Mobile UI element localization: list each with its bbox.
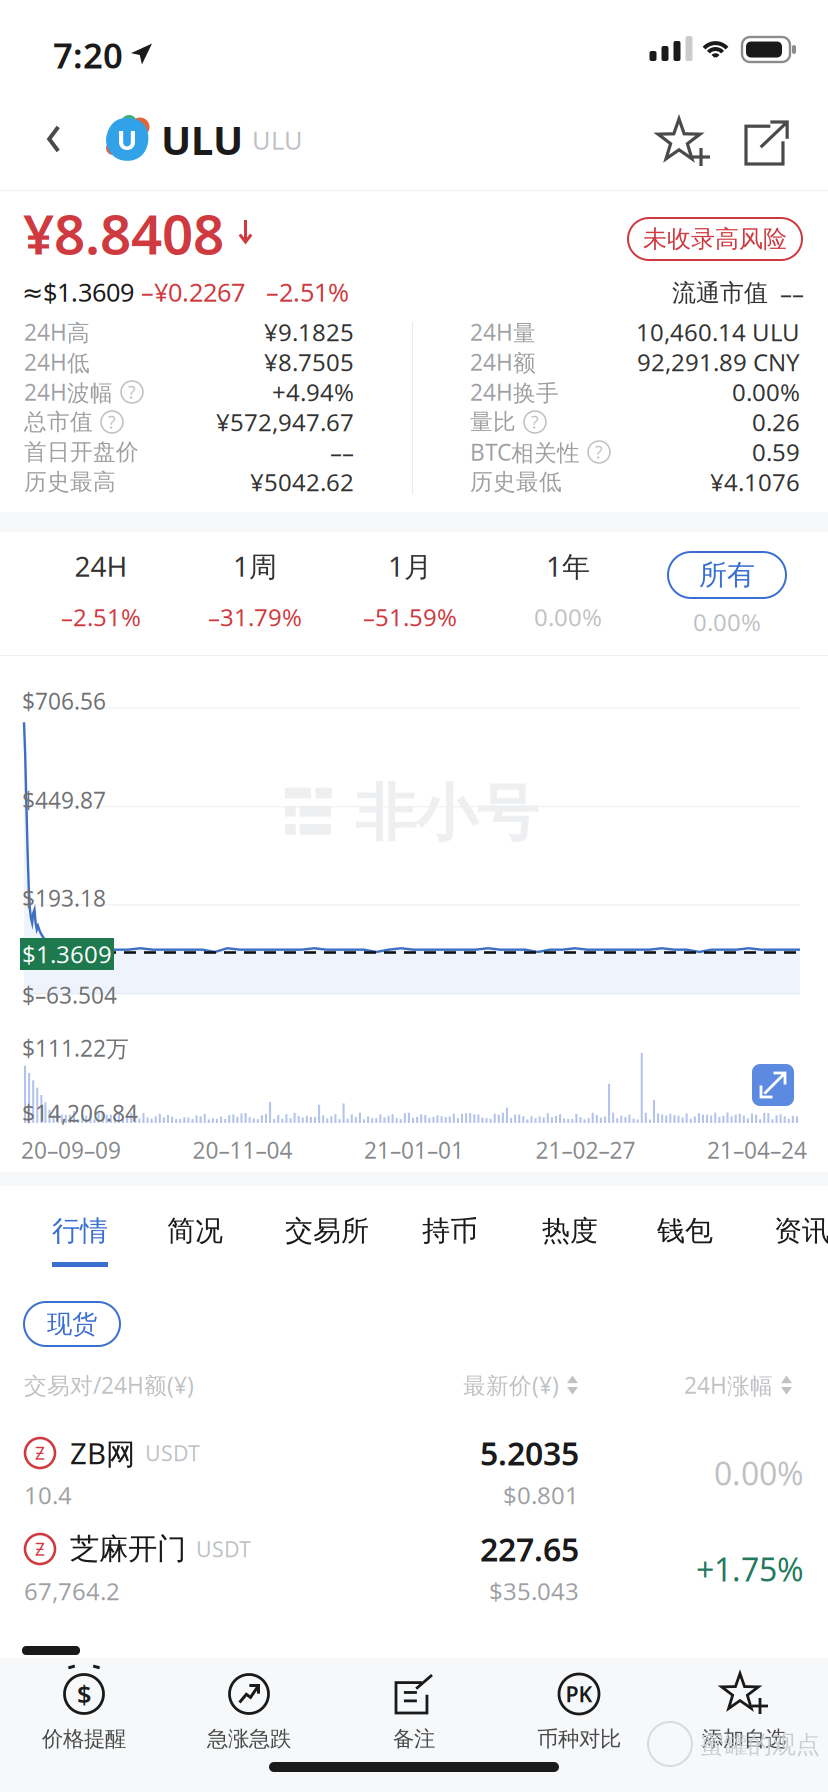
staticText: 交易所 — [285, 1214, 369, 1248]
button[interactable]: 钱包 — [635, 1200, 735, 1294]
staticText: 24H高 — [24, 317, 90, 347]
staticText: ? — [531, 410, 539, 433]
button[interactable]: 交易所 — [265, 1200, 389, 1294]
staticText: Ƶ — [35, 1441, 45, 1464]
staticText: +1.75% — [696, 1548, 804, 1590]
staticText: Ƶ — [35, 1537, 45, 1560]
staticText: 1月 — [388, 547, 432, 585]
button[interactable]: PK — [496, 1666, 661, 1756]
staticText: 24H波幅 — [24, 377, 113, 407]
staticText: $193.18 — [22, 883, 106, 913]
staticText: $14,206.84 — [22, 1098, 138, 1128]
button[interactable]: 未收录高风险 — [628, 218, 802, 260]
staticText: 历史最高 — [24, 468, 116, 496]
staticText: 24H额 — [470, 347, 536, 377]
button[interactable]: 备注 — [331, 1666, 496, 1756]
staticText: 行情 — [52, 1214, 108, 1248]
button[interactable]: 急涨急跌 — [166, 1666, 331, 1756]
staticText: ULU — [161, 113, 243, 166]
staticText: 历史最低 — [470, 468, 562, 496]
staticText: 0.59 — [752, 436, 800, 468]
staticText: $449.87 — [22, 785, 106, 815]
button[interactable]: 热度 — [520, 1200, 620, 1294]
button[interactable]: 持币 — [400, 1200, 500, 1294]
staticText: 持币 — [422, 1214, 478, 1248]
staticText: ¥9.1825 — [264, 316, 354, 348]
button[interactable]: 简况 — [145, 1200, 245, 1294]
staticText: 92,291.89 CNY — [637, 346, 800, 378]
button[interactable]: 1月 — [330, 540, 490, 642]
staticText: ≈$1.3609 — [22, 275, 134, 309]
staticText: 24H量 — [470, 317, 536, 347]
staticText: –¥0.2267 — [141, 275, 245, 309]
staticText: –2.51% — [61, 601, 141, 633]
staticText: $35.043 — [489, 1575, 579, 1607]
staticText: –2.51% — [266, 275, 349, 309]
staticText: 非小号 — [355, 776, 538, 851]
staticText: $0.801 — [503, 1479, 579, 1511]
staticText: 24H低 — [24, 347, 90, 377]
staticText: 21–04–24 — [707, 1135, 807, 1165]
button[interactable]: 24H — [21, 540, 181, 642]
staticText: $–63.504 — [22, 980, 117, 1010]
staticText: 钱包 — [657, 1214, 713, 1248]
staticText: 最新价(¥) — [463, 1370, 559, 1400]
staticText: 1年 — [546, 547, 590, 585]
staticText: 24H换手 — [470, 377, 559, 407]
staticText: 首日开盘价 — [24, 438, 139, 466]
button[interactable]: Add to favorites — [641, 96, 725, 190]
staticText: 芝麻开门 — [70, 1531, 186, 1567]
staticText: ¥572,947.67 — [216, 406, 354, 438]
staticText: 量比 — [470, 408, 516, 436]
staticText: ULU — [252, 123, 303, 157]
staticText: 价格提醒 — [42, 1726, 126, 1752]
staticText: $ — [77, 1677, 91, 1711]
staticText: 简况 — [167, 1214, 223, 1248]
staticText: 20–11–04 — [192, 1135, 292, 1165]
staticText: PK — [565, 1680, 592, 1708]
staticText: 1周 — [233, 547, 277, 585]
button[interactable]: Ƶ — [0, 1425, 828, 1521]
staticText: 21–01–01 — [364, 1135, 464, 1165]
button[interactable]: Back — [16, 92, 92, 186]
staticText: 0.00% — [714, 1452, 804, 1494]
button[interactable]: 资讯 — [752, 1200, 828, 1294]
staticText: 0.00% — [732, 376, 800, 408]
staticText: 10.4 — [24, 1479, 72, 1511]
staticText: 0.26 — [752, 406, 800, 438]
staticText: ¥5042.62 — [250, 466, 354, 498]
staticText: 所有 — [699, 558, 755, 592]
button[interactable]: 现货 — [24, 1302, 120, 1346]
staticText: 24H涨幅 — [684, 1370, 773, 1400]
staticText: –31.79% — [208, 601, 302, 633]
staticText: +4.94% — [272, 376, 354, 408]
button[interactable]: Ƶ — [0, 1521, 828, 1617]
button[interactable]: 行情 — [30, 1200, 130, 1294]
staticText: 流通市值 — [672, 278, 768, 308]
button[interactable]: 所有 — [647, 550, 807, 600]
staticText: ¥8.8408 — [23, 197, 224, 270]
button[interactable]: $ — [1, 1666, 166, 1756]
staticText: 21–02–27 — [535, 1135, 635, 1165]
staticText: 添加自选 — [702, 1726, 786, 1752]
staticText: $1.3609 — [22, 938, 112, 970]
staticText: ¥8.7505 — [264, 346, 354, 378]
staticText: BTC相关性 — [470, 437, 580, 467]
staticText: 备注 — [393, 1726, 435, 1752]
staticText: ? — [128, 380, 136, 403]
staticText: 蜜罐的观点 — [700, 1730, 820, 1759]
button[interactable]: 添加自选 — [661, 1666, 826, 1756]
staticText: 5.2035 — [480, 1432, 579, 1474]
button[interactable]: 1周 — [175, 540, 335, 642]
button[interactable]: Fullscreen chart — [752, 1064, 794, 1106]
staticText: ? — [595, 440, 603, 463]
staticText: $706.56 — [22, 686, 106, 716]
staticText: 24H — [74, 547, 127, 585]
staticText: USDT — [145, 1439, 200, 1467]
button[interactable]: Share — [726, 96, 808, 190]
staticText: 热度 — [542, 1214, 598, 1248]
button[interactable]: 1年 — [488, 540, 648, 642]
staticText: 未收录高风险 — [643, 224, 787, 254]
staticText: –51.59% — [363, 601, 457, 633]
staticText: $111.22万 — [22, 1033, 129, 1063]
